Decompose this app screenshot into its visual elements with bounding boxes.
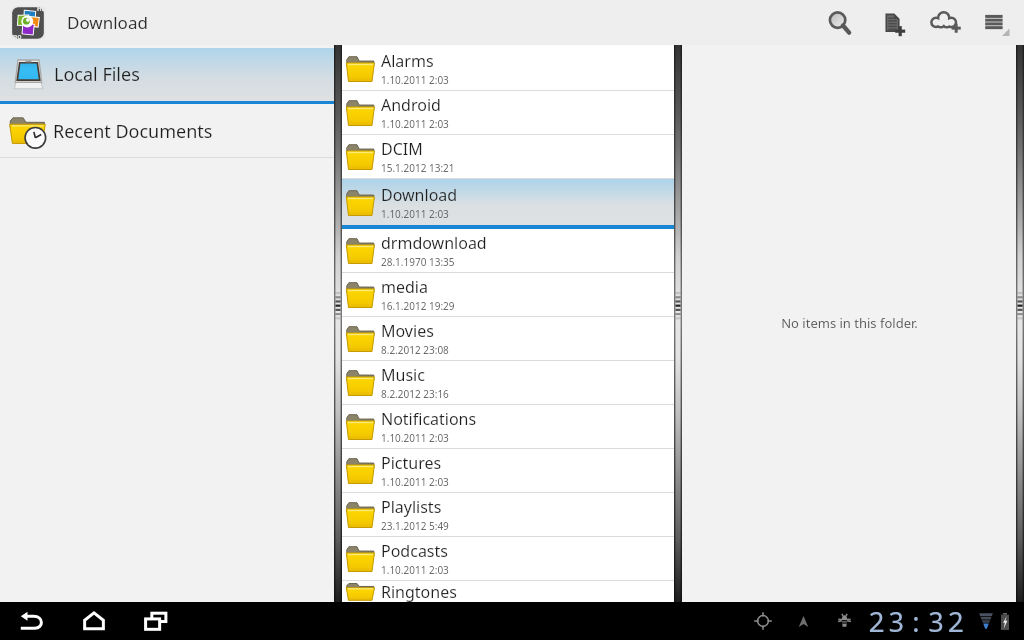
staticText: Pictures: [381, 452, 442, 474]
button[interactable]: Android: [342, 91, 674, 134]
button[interactable]: media: [342, 273, 674, 316]
button[interactable]: Recent apps: [138, 603, 174, 639]
staticText: Android: [381, 94, 441, 116]
button[interactable]: Local Files: [0, 48, 334, 101]
staticText: 1.10.2011 2:03: [381, 117, 449, 131]
staticText: Download: [381, 184, 458, 206]
staticText: Local Files: [54, 62, 140, 87]
button[interactable]: Home: [76, 603, 112, 639]
staticText: 16.1.2012 19:29: [381, 299, 455, 313]
button[interactable]: Movies: [342, 317, 674, 360]
staticText: Podcasts: [381, 540, 448, 562]
staticText: 1.10.2011 2:03: [381, 73, 449, 87]
button[interactable]: Ringtones: [342, 581, 674, 602]
button[interactable]: OfficeSuite Pro HD: [10, 5, 46, 41]
staticText: 1.10.2011 2:03: [381, 431, 449, 445]
button[interactable]: Pictures: [342, 449, 674, 492]
staticText: Playlists: [381, 496, 442, 518]
staticText: drmdownload: [381, 232, 487, 254]
staticText: 1.10.2011 2:03: [381, 207, 449, 221]
button[interactable]: Music: [342, 361, 674, 404]
staticText: 8.2.2012 23:16: [381, 387, 449, 401]
button[interactable]: Download: [342, 179, 674, 225]
button[interactable]: Search: [813, 0, 866, 45]
button[interactable]: Upload to cloud: [919, 0, 968, 45]
staticText: Recent Documents: [53, 119, 213, 144]
staticText: Download: [67, 11, 148, 34]
button[interactable]: drmdownload: [342, 229, 674, 272]
staticText: 1.10.2011 2:03: [381, 563, 449, 577]
staticText: 23:32: [868, 602, 968, 640]
staticText: Movies: [381, 320, 434, 342]
button[interactable]: Alarms: [342, 47, 674, 90]
button[interactable]: New document: [866, 0, 919, 45]
button[interactable]: Back: [14, 603, 50, 639]
staticText: PRO: [11, 34, 22, 41]
staticText: 15.1.2012 13:21: [381, 161, 455, 175]
staticText: Ringtones: [381, 581, 457, 602]
staticText: No items in this folder.: [781, 314, 918, 332]
button[interactable]: Notifications: [342, 405, 674, 448]
staticText: Music: [381, 364, 425, 386]
staticText: media: [381, 276, 428, 298]
staticText: 28.1.1970 13:35: [381, 255, 455, 269]
staticText: Alarms: [381, 50, 434, 72]
button[interactable]: Podcasts: [342, 537, 674, 580]
staticText: 1.10.2011 2:03: [381, 475, 449, 489]
staticText: 23.1.2012 5:49: [381, 519, 449, 533]
button[interactable]: Recent Documents: [0, 104, 334, 157]
staticText: HD: [37, 5, 46, 13]
button[interactable]: Playlists: [342, 493, 674, 536]
button[interactable]: DCIM: [342, 135, 674, 178]
staticText: Notifications: [381, 408, 477, 430]
button[interactable]: More options: [968, 0, 1024, 45]
staticText: DCIM: [381, 138, 423, 160]
staticText: 8.2.2012 23:08: [381, 343, 449, 357]
